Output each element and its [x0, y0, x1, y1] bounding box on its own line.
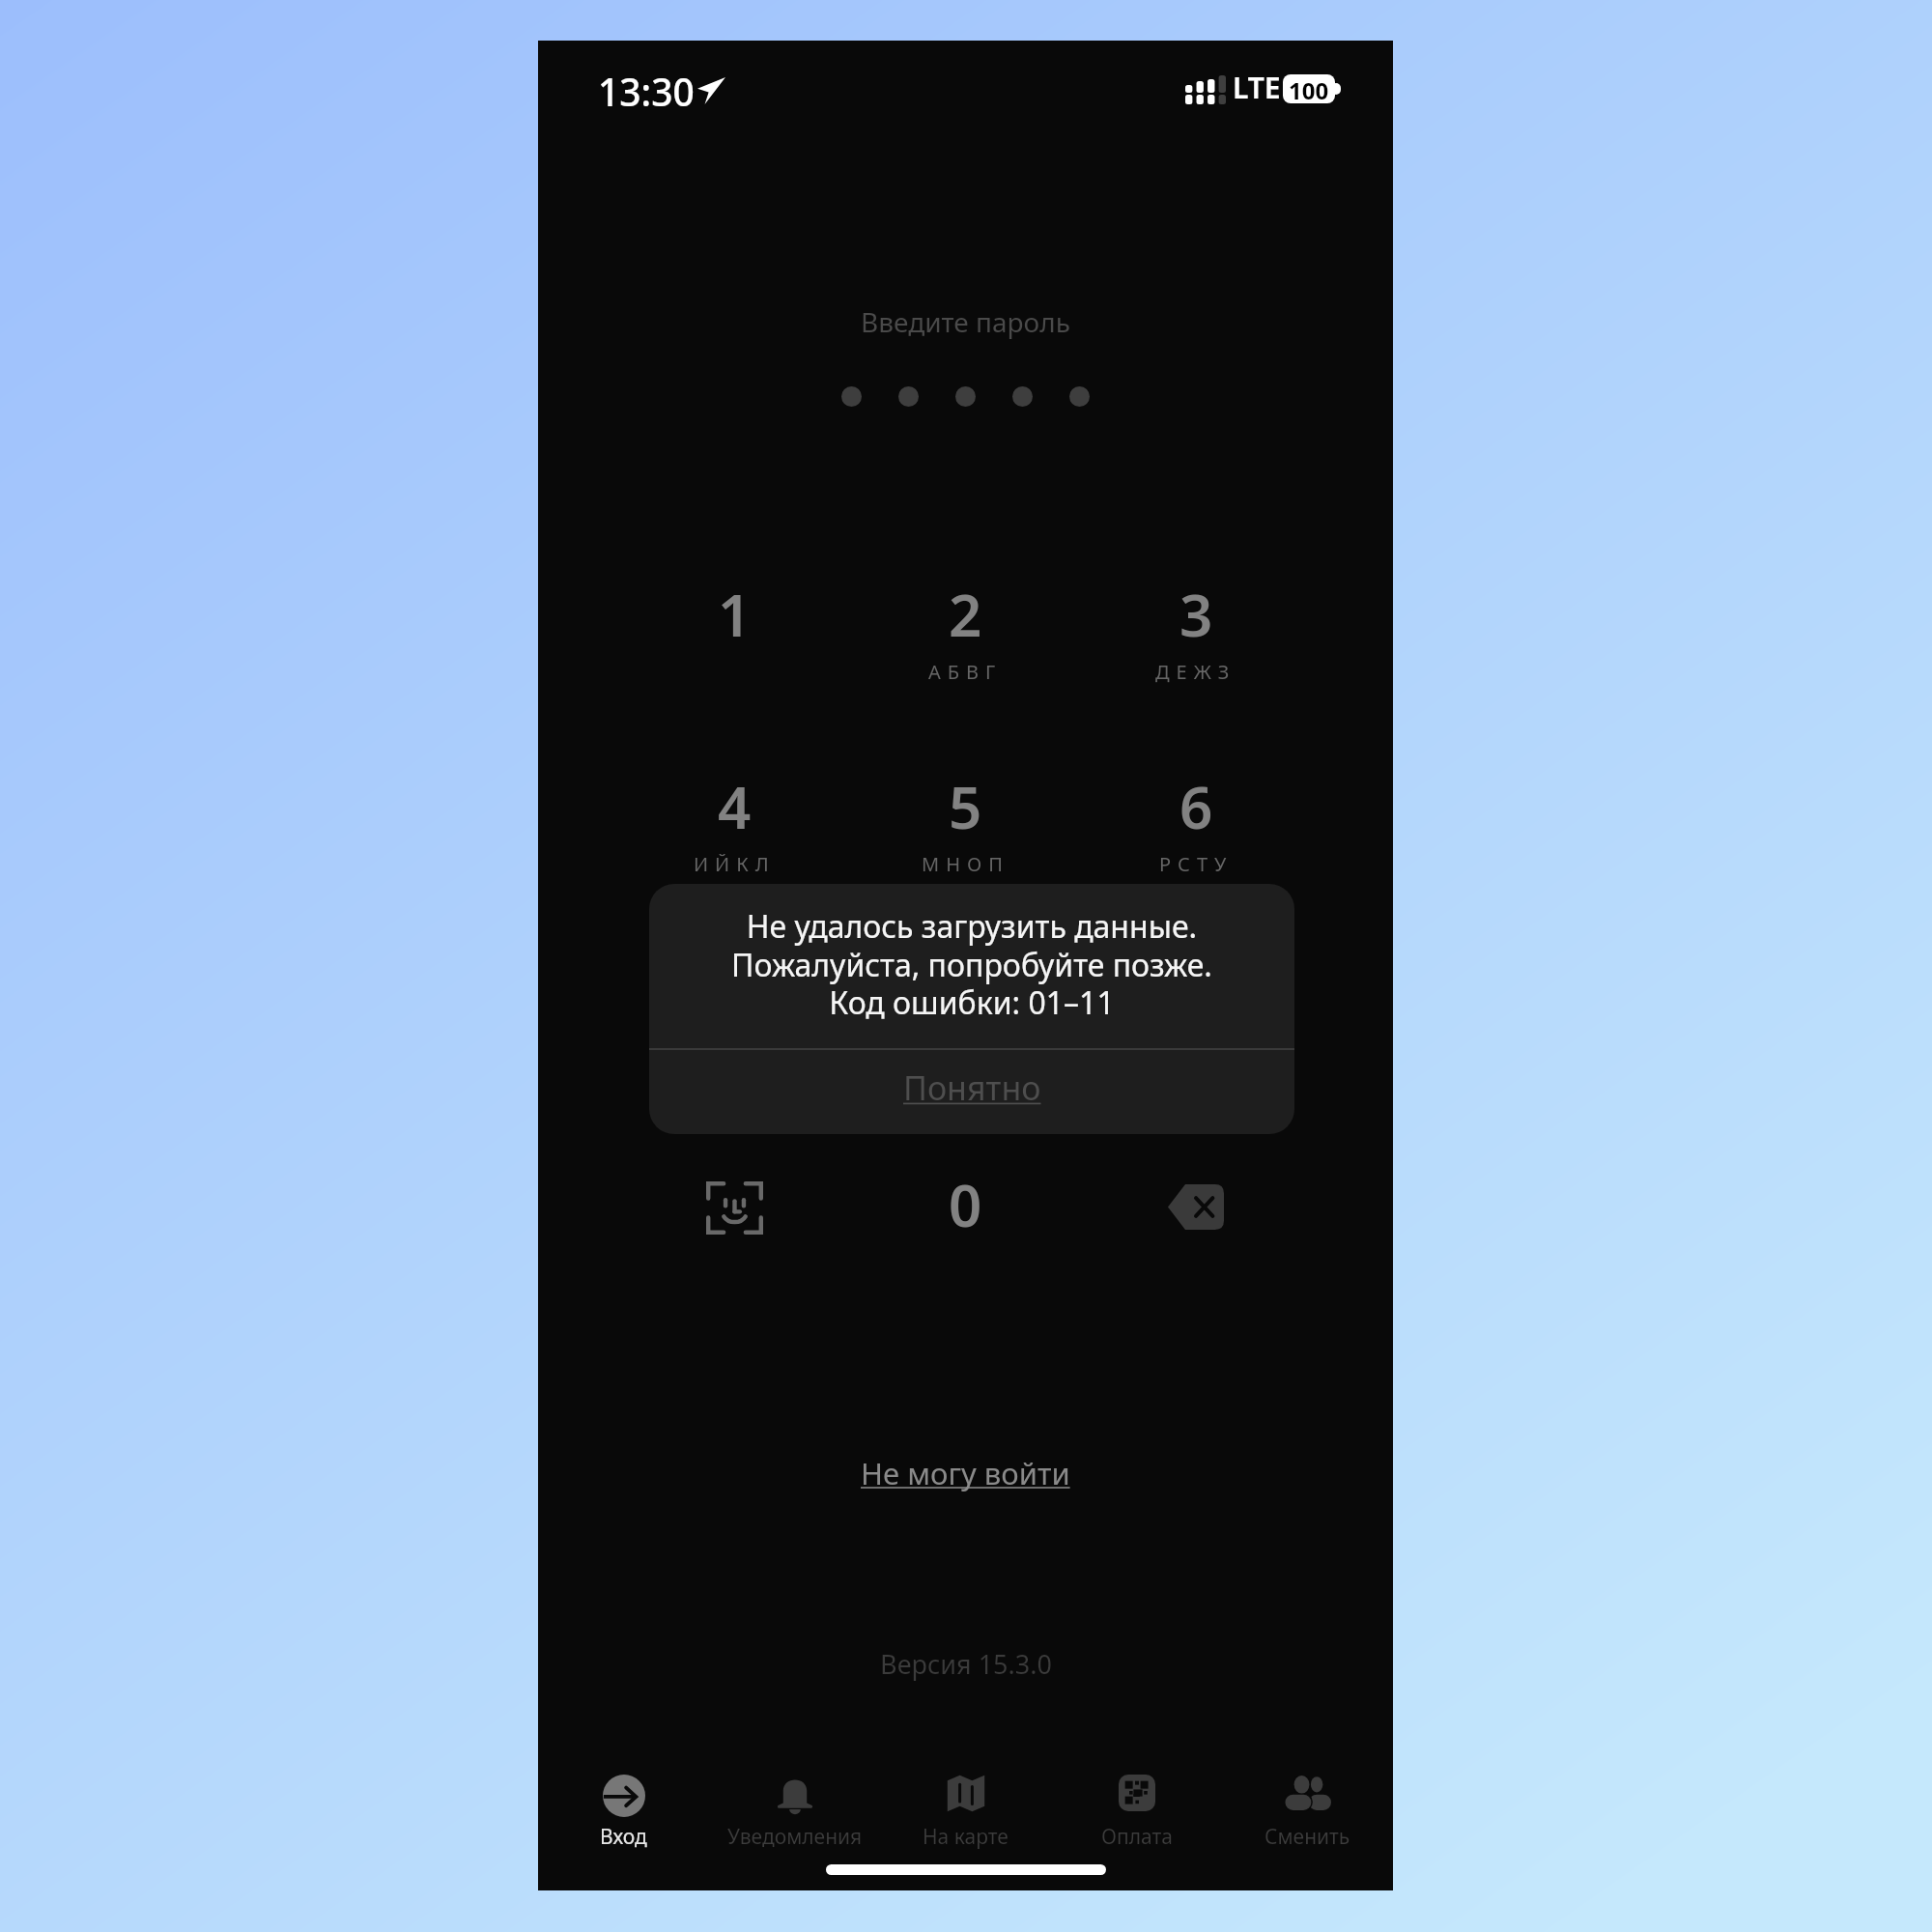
staticText: 100: [1289, 74, 1329, 103]
staticText: Не удалось загрузить данные. Пожалуйста,…: [649, 905, 1294, 1023]
button[interactable]: Не могу войти: [851, 1445, 1080, 1501]
staticText: На карте: [923, 1823, 1009, 1851]
button[interactable]: 1: [620, 558, 848, 723]
staticText: Не могу войти: [861, 1453, 1070, 1493]
button[interactable]: 0: [851, 1149, 1079, 1313]
staticText: Сменить: [1264, 1823, 1350, 1851]
staticText: МНОП: [922, 851, 1009, 877]
staticText: Понятно: [903, 1065, 1041, 1110]
staticText: 6: [1179, 767, 1213, 846]
staticText: 0: [949, 1165, 982, 1244]
button[interactable]: Вход: [538, 1717, 709, 1852]
button[interactable]: Уведомления: [709, 1717, 880, 1852]
staticText: 13:30: [598, 66, 695, 117]
staticText: 2: [949, 575, 982, 654]
button[interactable]: 2: [851, 558, 1079, 723]
button[interactable]: Сменить: [1222, 1717, 1393, 1852]
staticText: 7: [718, 959, 752, 1038]
button[interactable]: Удалить: [1082, 1149, 1310, 1313]
staticText: 8: [949, 959, 982, 1038]
staticText: 3: [1179, 575, 1213, 654]
staticText: Уведомления: [727, 1823, 863, 1851]
button[interactable]: Понятно: [649, 1049, 1294, 1134]
staticText: 1: [718, 575, 752, 654]
staticText: ИЙКЛ: [694, 851, 776, 877]
staticText: 9: [1179, 959, 1213, 1038]
button[interactable]: 5: [851, 751, 1079, 915]
button[interactable]: Face ID: [620, 1149, 848, 1313]
button[interactable]: 8: [851, 943, 1079, 1107]
staticText: РСТУ: [1159, 851, 1234, 877]
button[interactable]: 6: [1082, 751, 1310, 915]
staticText: Версия 15.3.0: [880, 1646, 1052, 1682]
staticText: ДЕЖЗ: [1155, 659, 1236, 685]
staticText: ЬЭЮЯ: [1154, 1043, 1237, 1069]
button[interactable]: 7: [620, 943, 848, 1107]
staticText: Оплата: [1101, 1823, 1173, 1851]
staticText: Вход: [600, 1823, 647, 1851]
staticText: ШЩЪЫ: [917, 1043, 1013, 1069]
staticText: 5: [949, 767, 982, 846]
button[interactable]: 9: [1082, 943, 1310, 1107]
button[interactable]: 3: [1082, 558, 1310, 723]
staticText: ФХЦЧ: [694, 1043, 775, 1069]
staticText: Введите пароль: [861, 303, 1070, 340]
button[interactable]: Оплата: [1051, 1717, 1222, 1852]
button[interactable]: На карте: [880, 1717, 1051, 1852]
staticText: АБВГ: [928, 659, 1003, 685]
button[interactable]: 4: [620, 751, 848, 915]
staticText: LTE: [1233, 68, 1281, 107]
staticText: 4: [718, 767, 752, 846]
